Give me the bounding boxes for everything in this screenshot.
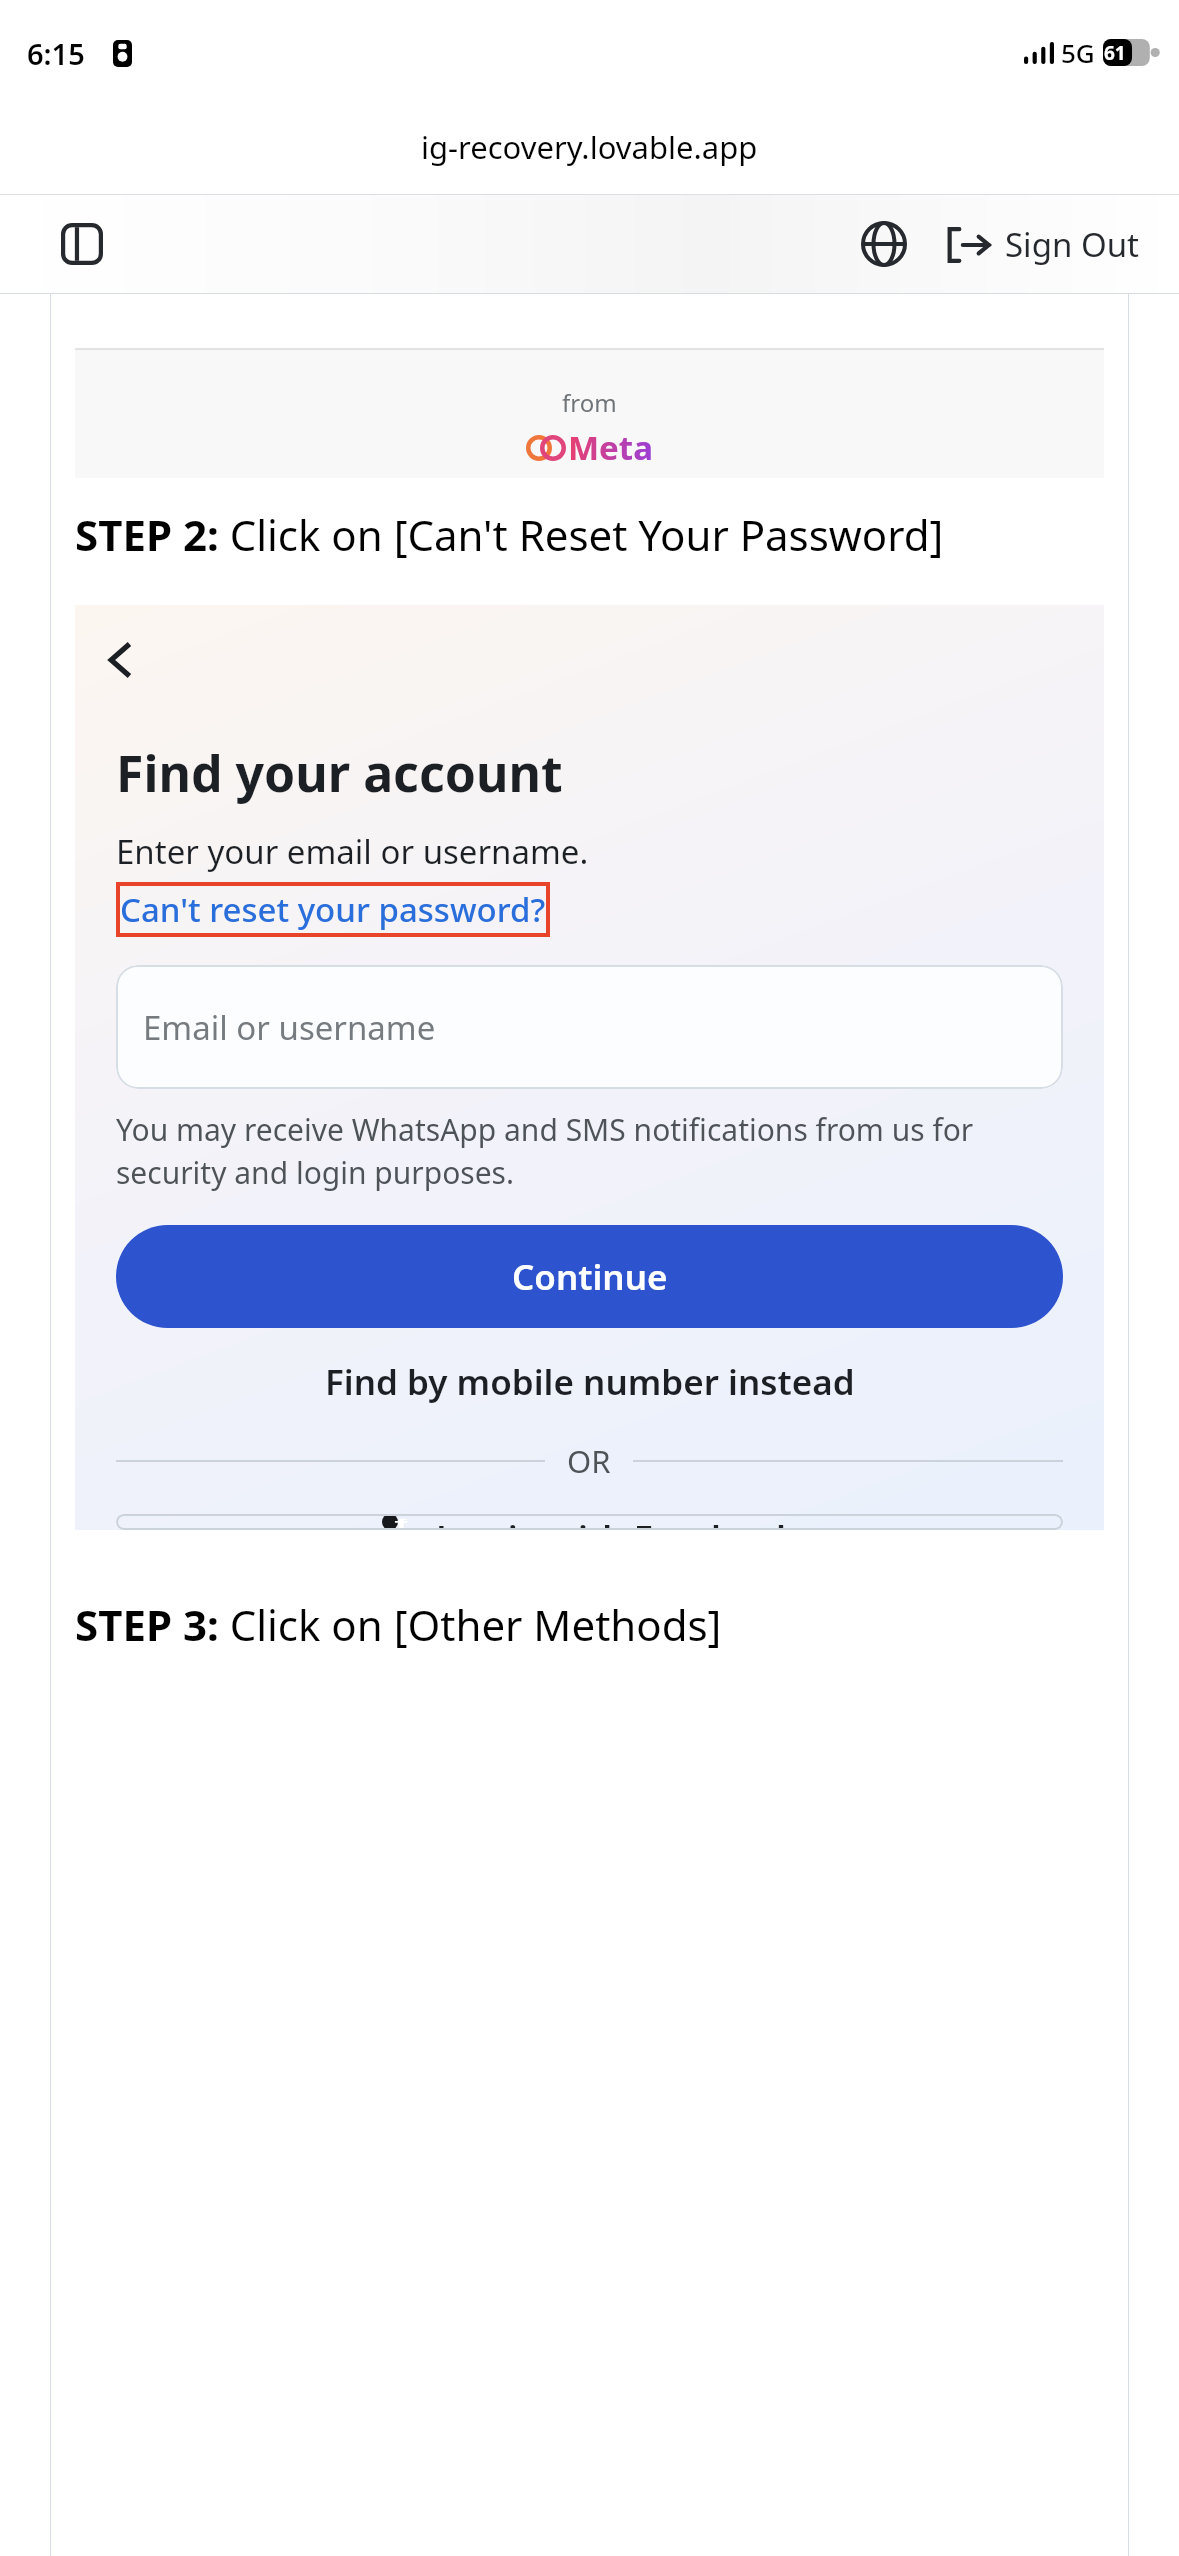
staticText: Sign Out	[1005, 222, 1139, 267]
staticText: from	[562, 386, 617, 419]
staticText: OR	[567, 1440, 611, 1482]
staticText: ig-recovery.lovable.app	[421, 126, 758, 168]
staticText: Email or username	[143, 1005, 436, 1050]
button[interactable]: Log in with Facebook	[116, 1514, 1063, 1530]
button[interactable]: Sign Out	[941, 214, 1145, 275]
staticText: Find your account	[116, 739, 563, 807]
staticText: Log in with Facebook	[436, 1514, 797, 1530]
button[interactable]: Toggle sidebar	[50, 212, 114, 276]
staticText: 5G	[1061, 35, 1095, 70]
staticText: 61	[1104, 40, 1126, 66]
staticText: You may receive WhatsApp and SMS notific…	[116, 1109, 1063, 1193]
staticText: STEP 3: Click on [Other Methods]	[75, 1596, 1104, 1653]
button[interactable]: Can't reset your password?	[116, 882, 550, 937]
staticText: Can't reset your password?	[120, 887, 546, 932]
button[interactable]: Email or username	[116, 965, 1063, 1089]
button[interactable]: Find by mobile number instead	[116, 1358, 1063, 1406]
staticText: Continue	[512, 1253, 668, 1301]
staticText: Enter your email or username.	[116, 829, 589, 874]
staticText: 6:15	[27, 34, 85, 73]
button[interactable]: Language	[851, 211, 917, 277]
staticText: Meta	[568, 425, 653, 470]
staticText: Find by mobile number instead	[325, 1358, 855, 1406]
button[interactable]: Back	[89, 629, 151, 691]
button[interactable]: Continue	[116, 1225, 1063, 1328]
staticText: STEP 2: Click on [Can't Reset Your Passw…	[75, 506, 1104, 563]
